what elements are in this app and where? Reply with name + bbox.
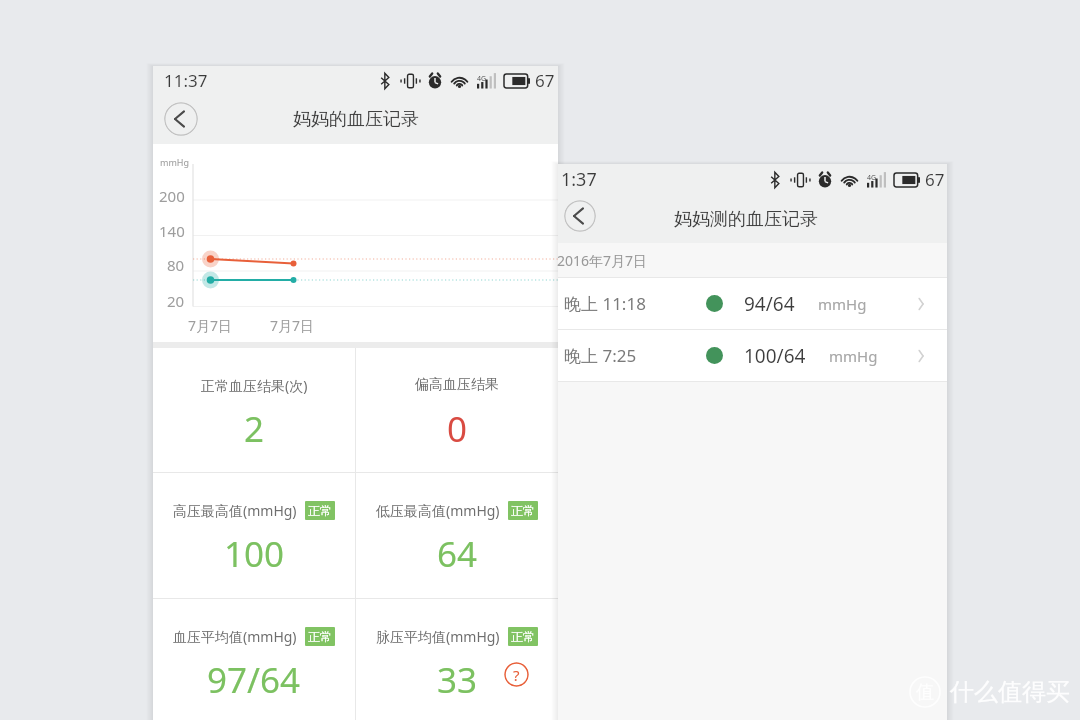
button[interactable]: 血压平均值(mmHg)	[153, 599, 355, 720]
staticText: 67	[925, 168, 945, 191]
button[interactable]: Back	[164, 102, 198, 136]
staticText: 正常	[511, 629, 535, 644]
staticText: 血压平均值(mmHg)	[173, 627, 297, 646]
button[interactable]: 低压最高值(mmHg)	[356, 473, 558, 598]
button[interactable]: Help	[504, 662, 529, 687]
staticText: 67	[535, 69, 555, 92]
staticText: 140	[159, 221, 185, 241]
staticText: 200	[159, 186, 185, 206]
button[interactable]: Back	[564, 200, 596, 232]
staticText: ?	[513, 665, 520, 685]
staticText: 7月7日	[270, 316, 315, 335]
staticText: 4G	[477, 74, 487, 84]
staticText: 4G	[867, 173, 877, 183]
staticText: 正常	[511, 503, 535, 518]
staticText: 偏高血压结果	[415, 376, 499, 394]
staticText: 100	[224, 530, 285, 578]
staticText: 11:37	[164, 69, 208, 92]
button[interactable]: 脉压平均值(mmHg)	[356, 599, 558, 720]
staticText: mmHg	[818, 294, 867, 314]
staticText: 7月7日	[188, 316, 233, 335]
staticText: mmHg	[160, 156, 190, 168]
staticText: 晚上 11:18	[564, 292, 646, 315]
staticText: 20	[167, 291, 185, 311]
button[interactable]: 偏高血压结果	[356, 348, 558, 472]
staticText: 94/64	[744, 291, 795, 317]
staticText: 2016年7月7日	[557, 251, 648, 270]
staticText: 正常	[308, 503, 332, 518]
staticText: 80	[167, 255, 185, 275]
staticText: 正常血压结果(次)	[201, 376, 308, 395]
staticText: 100/64	[744, 343, 806, 369]
staticText: 2	[244, 405, 265, 453]
button[interactable]: 晚上 7:25	[558, 330, 947, 381]
staticText: 妈妈测的血压记录	[674, 208, 818, 231]
staticText: 低压最高值(mmHg)	[376, 501, 500, 520]
staticText: 33	[437, 656, 478, 704]
staticText: 脉压平均值(mmHg)	[376, 627, 500, 646]
staticText: 晚上 7:25	[564, 344, 637, 367]
staticText: 高压最高值(mmHg)	[173, 501, 297, 520]
button[interactable]: 正常血压结果(次)	[153, 348, 355, 472]
staticText: mmHg	[829, 346, 878, 366]
button[interactable]: 高压最高值(mmHg)	[153, 473, 355, 598]
staticText: 什么值得买	[950, 677, 1070, 707]
staticText: 64	[437, 530, 478, 578]
button[interactable]: 晚上 11:18	[558, 278, 947, 329]
staticText: 1:37	[561, 167, 597, 192]
staticText: 妈妈的血压记录	[293, 108, 419, 131]
staticText: 正常	[308, 629, 332, 644]
staticText: 97/64	[207, 656, 301, 704]
staticText: 0	[447, 405, 468, 453]
